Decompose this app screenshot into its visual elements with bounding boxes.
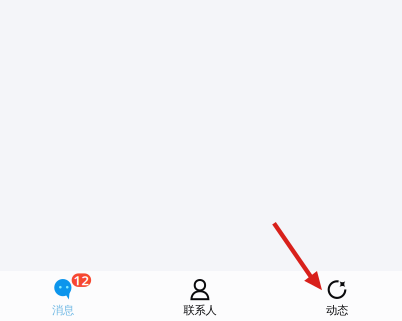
staticText: 消息 bbox=[52, 303, 74, 317]
staticText: 联系人 bbox=[183, 303, 216, 317]
staticText: 动态 bbox=[326, 303, 348, 317]
button[interactable]: 12 bbox=[0, 270, 134, 321]
button[interactable]: 动态 bbox=[268, 270, 402, 321]
button[interactable]: 联系人 bbox=[134, 270, 268, 321]
staticText: 12 bbox=[73, 271, 89, 289]
